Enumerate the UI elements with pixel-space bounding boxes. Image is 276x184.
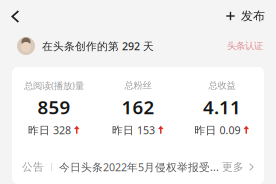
staticText: 昨日 153 [112,123,155,137]
staticText: 总粉丝 [124,80,151,91]
staticText: 总阅读(播放)量 [24,79,84,92]
staticText: 859 [37,95,70,119]
staticText: 公告 [22,160,44,173]
button[interactable]: 公告 [12,154,264,180]
staticText: 162 [121,95,154,119]
button[interactable]: 发布 [226,1,276,30]
staticText: 发布 [241,9,265,23]
staticText: 在头条创作的第 292 天 [42,39,154,53]
staticText: 总收益 [208,80,235,91]
staticText: 今日头条2022年5月侵权举报受理... [59,160,222,174]
staticText: 昨日 0.09 [194,123,240,137]
button[interactable]: Back [0,0,34,32]
staticText: 更多 [222,160,244,173]
staticText: 4.11 [203,95,241,119]
staticText: 头条认证 [227,40,263,52]
staticText: 昨日 328 [28,123,71,137]
